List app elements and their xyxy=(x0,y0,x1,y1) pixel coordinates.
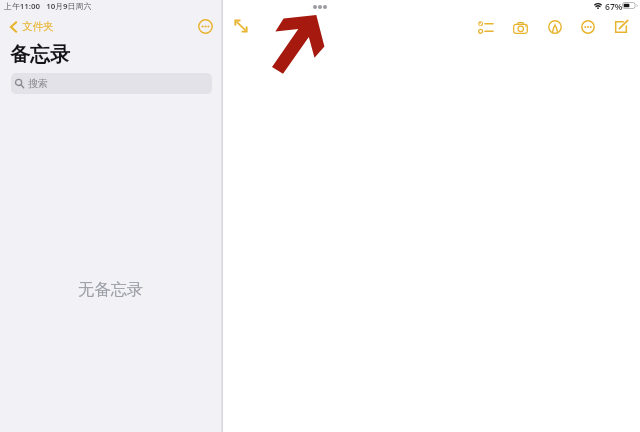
button[interactable]: More options xyxy=(196,17,215,36)
staticText: 文件夹 xyxy=(22,20,54,33)
button[interactable]: Window controls xyxy=(313,5,327,9)
button[interactable]: 文件夹 xyxy=(10,17,54,36)
staticText: 上午11:00 10月9日周六 xyxy=(4,1,92,12)
button[interactable]: More xyxy=(579,18,597,36)
staticText: 备忘录 xyxy=(10,42,70,67)
button[interactable]: Markup xyxy=(546,18,564,36)
staticText: 搜索 xyxy=(28,77,48,90)
staticText: 无备忘录 xyxy=(78,279,144,300)
button[interactable]: Camera xyxy=(510,18,530,38)
button[interactable]: Checklist xyxy=(476,18,495,37)
button[interactable]: 搜索 xyxy=(11,73,212,94)
staticText: 67% xyxy=(605,1,623,13)
button[interactable]: New note xyxy=(612,18,630,36)
button[interactable]: Expand xyxy=(232,17,250,35)
